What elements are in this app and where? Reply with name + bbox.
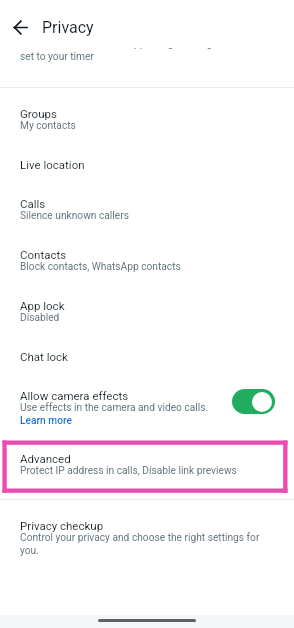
button[interactable]: Back xyxy=(4,11,36,43)
button[interactable]: Calls xyxy=(0,184,294,235)
staticText: Use effects in the camera and video call… xyxy=(20,402,209,426)
button[interactable]: Allow camera effects toggle xyxy=(232,389,275,414)
staticText: Allow camera effects xyxy=(20,389,129,402)
button[interactable]: Default message timer xyxy=(0,48,294,81)
staticText: Control your privacy and choose the righ… xyxy=(20,532,278,556)
staticText: Block contacts, WhatsApp contacts xyxy=(20,261,181,273)
staticText: App lock xyxy=(20,299,65,312)
staticText: Live location xyxy=(20,158,85,171)
button[interactable]: Live location xyxy=(0,145,294,184)
staticText: Advanced xyxy=(20,452,71,465)
staticText: Disabled xyxy=(20,312,60,324)
staticText: Groups xyxy=(20,107,57,120)
button[interactable]: Advanced xyxy=(0,439,294,490)
button[interactable]: App lock xyxy=(0,286,294,337)
staticText: Calls xyxy=(20,197,46,210)
staticText: Chat lock xyxy=(20,350,68,363)
staticText: Privacy checkup xyxy=(20,519,104,532)
button[interactable]: Allow camera effects xyxy=(0,376,294,439)
staticText: Contacts xyxy=(20,248,67,261)
staticText: My contacts xyxy=(20,120,76,132)
button[interactable]: Groups xyxy=(0,94,294,145)
button[interactable]: Privacy checkup xyxy=(0,506,294,569)
staticText: Protect IP address in calls, Disable lin… xyxy=(20,465,237,477)
button[interactable]: Contacts xyxy=(0,235,294,286)
button[interactable]: Chat lock xyxy=(0,337,294,376)
staticText: Silence unknown callers xyxy=(20,210,129,222)
staticText: Start new chats with disappearing messag… xyxy=(20,48,238,62)
staticText: Privacy xyxy=(42,18,94,37)
